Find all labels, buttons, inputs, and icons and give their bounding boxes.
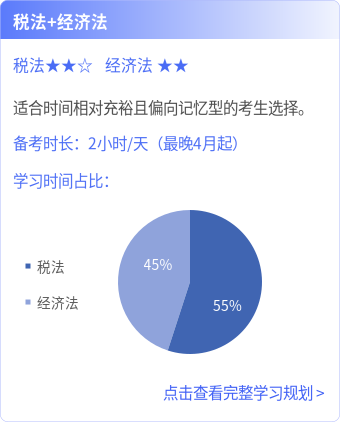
staticText: 45% <box>143 254 172 274</box>
staticText: 55% <box>213 295 242 315</box>
staticText: 适合时间相对充裕且偏向记忆型的考生选择。 <box>13 96 313 118</box>
staticText: 经济法 <box>37 292 79 312</box>
staticText: 税法 <box>37 256 65 276</box>
staticText: 点击查看完整学习规划 > <box>163 381 325 403</box>
staticText: 学习时间占比： <box>13 169 118 191</box>
staticText: 税法+经济法 <box>13 9 108 33</box>
button[interactable]: 点击查看完整学习规划 > <box>153 379 325 405</box>
staticText: 税法★★☆ 经济法 ★★ <box>13 53 189 76</box>
staticText: 备考时长：2小时/天（最晚4月起） <box>13 131 247 154</box>
